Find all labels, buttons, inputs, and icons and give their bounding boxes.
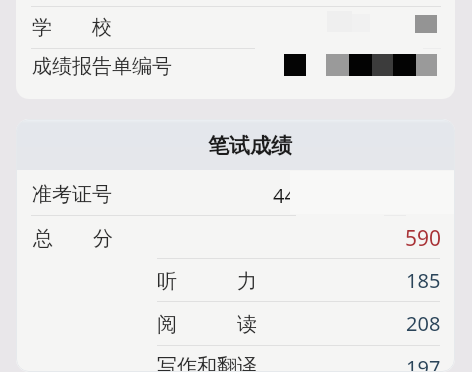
button[interactable]	[16, 258, 455, 301]
staticText: 185	[406, 267, 441, 294]
staticText: 208	[406, 310, 441, 337]
staticText: 阅 读	[157, 310, 257, 337]
button[interactable]	[16, 49, 455, 90]
staticText: 总 分	[33, 224, 113, 251]
staticText: 学 校	[32, 13, 112, 40]
staticText: 44	[273, 182, 296, 209]
button[interactable]	[16, 7, 455, 48]
button[interactable]	[16, 119, 455, 170]
staticText: 写作和翻译	[157, 354, 257, 372]
staticText: 准考证号	[32, 182, 112, 207]
button[interactable]	[16, 215, 455, 258]
button[interactable]	[16, 301, 455, 344]
button[interactable]	[16, 345, 455, 372]
staticText: 590	[405, 224, 442, 253]
staticText: 成绩报告单编号	[32, 54, 172, 79]
staticText: 笔试成绩	[208, 133, 292, 159]
button[interactable]	[16, 170, 455, 215]
staticText: 听 力	[157, 267, 257, 294]
staticText: 197	[406, 354, 441, 372]
